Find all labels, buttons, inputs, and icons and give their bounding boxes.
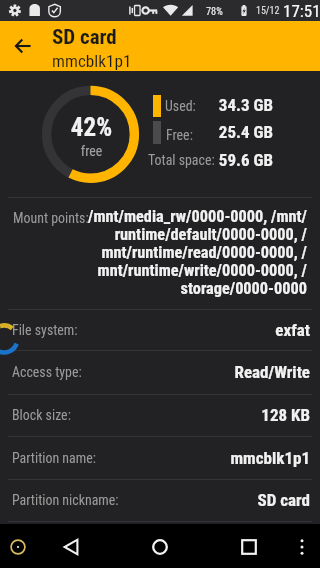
button[interactable]: Home xyxy=(143,530,177,564)
staticText: mmcblk1p1 xyxy=(100,448,310,468)
staticText: 128 KB xyxy=(75,405,310,425)
staticText: 25.4 GB xyxy=(173,122,273,142)
button[interactable]: Assistant xyxy=(6,535,30,559)
staticText: 42% xyxy=(41,113,142,142)
staticText: Mount points: xyxy=(13,210,89,226)
staticText: Free: xyxy=(166,127,193,143)
button[interactable]: Navigate up xyxy=(0,23,46,69)
staticText: Total space: xyxy=(148,152,215,168)
staticText: Partition nickname: xyxy=(12,492,119,508)
staticText: free xyxy=(41,143,142,159)
staticText: SD card xyxy=(123,490,310,510)
button[interactable]: Access type: xyxy=(0,350,320,393)
staticText: exfat xyxy=(82,320,310,340)
button[interactable]: Recent apps xyxy=(232,530,266,564)
button[interactable]: More options xyxy=(290,535,314,559)
staticText: File system: xyxy=(12,322,78,338)
staticText: 15/12 xyxy=(256,5,280,17)
button[interactable]: Back xyxy=(54,530,88,564)
staticText: /mnt/media_rw/0000-0000, /mnt/ runtime/d… xyxy=(88,207,307,298)
staticText: Used: xyxy=(165,98,196,114)
button[interactable]: Partition name: xyxy=(0,436,320,479)
staticText: 78% xyxy=(206,5,223,17)
staticText: 34.3 GB xyxy=(173,95,273,115)
staticText: mmcblk1p1 xyxy=(52,51,132,71)
staticText: Partition name: xyxy=(12,450,96,466)
button[interactable]: File system: xyxy=(0,309,320,351)
staticText: SD card xyxy=(52,25,117,50)
staticText: Read/Write xyxy=(86,362,310,382)
staticText: Block size: xyxy=(12,407,71,423)
button[interactable]: Partition nickname: xyxy=(0,479,320,521)
staticText: 59.6 GB xyxy=(173,150,273,170)
staticText: Access type: xyxy=(12,364,82,380)
button[interactable]: Mount points: xyxy=(0,197,320,309)
staticText: 17:51 xyxy=(283,1,320,21)
button[interactable]: Block size: xyxy=(0,394,320,436)
